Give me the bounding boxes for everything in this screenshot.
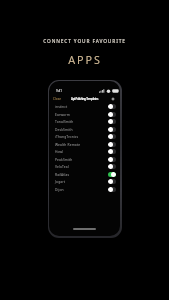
button[interactable] (108, 119, 116, 124)
button[interactable] (108, 134, 116, 139)
button[interactable]: Jogart (55, 178, 116, 184)
staticText: instinct (55, 104, 68, 108)
button[interactable]: Howl (55, 148, 116, 154)
button[interactable]: Add (110, 96, 116, 102)
staticText: TonalSmith (55, 119, 74, 123)
button[interactable]: VeloTeal (55, 163, 116, 169)
staticText: RailAtlas (55, 172, 70, 176)
button[interactable]: Close (53, 97, 62, 101)
staticText: iThangTronics (55, 134, 79, 138)
button[interactable]: Wealth Remote (55, 141, 116, 147)
button[interactable] (108, 149, 116, 154)
button[interactable] (108, 172, 116, 177)
staticText: Earworm (55, 112, 70, 116)
staticText: Dijon (55, 187, 64, 191)
button[interactable] (108, 142, 116, 147)
staticText: Jogart (55, 179, 66, 183)
button[interactable]: Earworm (55, 111, 116, 117)
staticText: 9:41 (56, 89, 62, 93)
staticText: PeakSmith (55, 157, 73, 161)
staticText: DeskSmith (55, 127, 73, 131)
button[interactable]: iThangTronics (55, 133, 116, 139)
staticText: VeloTeal (55, 164, 69, 168)
button[interactable] (108, 179, 116, 184)
button[interactable] (108, 187, 116, 192)
button[interactable] (108, 127, 116, 132)
button[interactable]: TonalSmith (55, 118, 116, 124)
button[interactable] (108, 157, 116, 162)
staticText: Apt Polishing Templates (71, 97, 99, 101)
staticText: CONNECT YOUR FAVOURITE (43, 38, 126, 45)
button[interactable] (108, 164, 116, 169)
staticText: Wealth Remote (55, 142, 81, 146)
button[interactable]: Dijon (55, 186, 116, 192)
button[interactable]: instinct (55, 103, 116, 109)
button[interactable]: DeskSmith (55, 126, 116, 132)
button[interactable] (108, 112, 116, 117)
button[interactable] (108, 104, 116, 109)
staticText: Howl (55, 149, 64, 153)
staticText: APPS (68, 52, 102, 67)
staticText: Close (53, 97, 62, 101)
button[interactable]: RailAtlas (55, 171, 116, 177)
button[interactable]: PeakSmith (55, 156, 116, 162)
